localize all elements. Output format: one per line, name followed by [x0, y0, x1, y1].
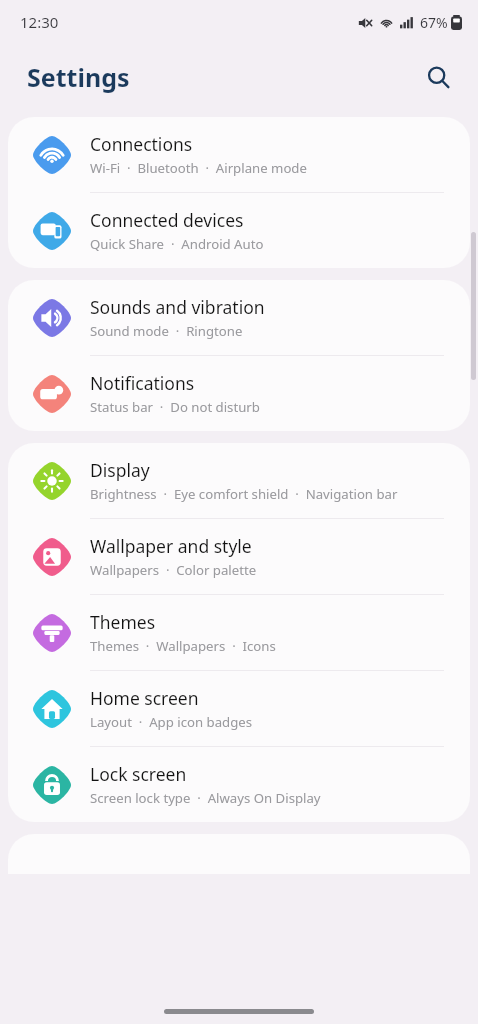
button[interactable]: Lock screen: [8, 747, 470, 822]
staticText: Screen lock type · Always On Display: [90, 789, 321, 807]
button[interactable]: Sounds and vibration: [8, 280, 470, 355]
staticText: Display: [90, 458, 150, 482]
button[interactable]: Wallpaper and style: [8, 519, 470, 594]
staticText: Wi-Fi · Bluetooth · Airplane mode: [90, 159, 307, 177]
staticText: Status bar · Do not disturb: [90, 398, 260, 416]
button[interactable]: Notifications: [8, 356, 470, 431]
staticText: 12:30: [20, 12, 59, 32]
staticText: Brightness · Eye comfort shield · Naviga…: [90, 485, 398, 503]
button[interactable]: Search: [416, 55, 460, 99]
staticText: Home screen: [90, 686, 199, 710]
staticText: Connections: [90, 132, 193, 156]
button[interactable]: Connections: [8, 117, 470, 192]
staticText: Sound mode · Ringtone: [90, 322, 243, 340]
staticText: Lock screen: [90, 762, 187, 786]
staticText: Quick Share · Android Auto: [90, 235, 264, 253]
button[interactable]: Connected devices: [8, 193, 470, 268]
staticText: Notifications: [90, 371, 195, 395]
button[interactable]: Home screen: [8, 671, 470, 746]
staticText: Wallpapers · Color palette: [90, 561, 257, 579]
staticText: Themes: [90, 610, 156, 634]
button[interactable]: Themes: [8, 595, 470, 670]
staticText: Wallpaper and style: [90, 534, 252, 558]
staticText: Layout · App icon badges: [90, 713, 253, 731]
staticText: Settings: [27, 60, 130, 94]
button[interactable]: Display: [8, 443, 470, 518]
staticText: 67%: [420, 13, 448, 32]
staticText: Connected devices: [90, 208, 244, 232]
staticText: Themes · Wallpapers · Icons: [90, 637, 276, 655]
staticText: Sounds and vibration: [90, 295, 265, 319]
